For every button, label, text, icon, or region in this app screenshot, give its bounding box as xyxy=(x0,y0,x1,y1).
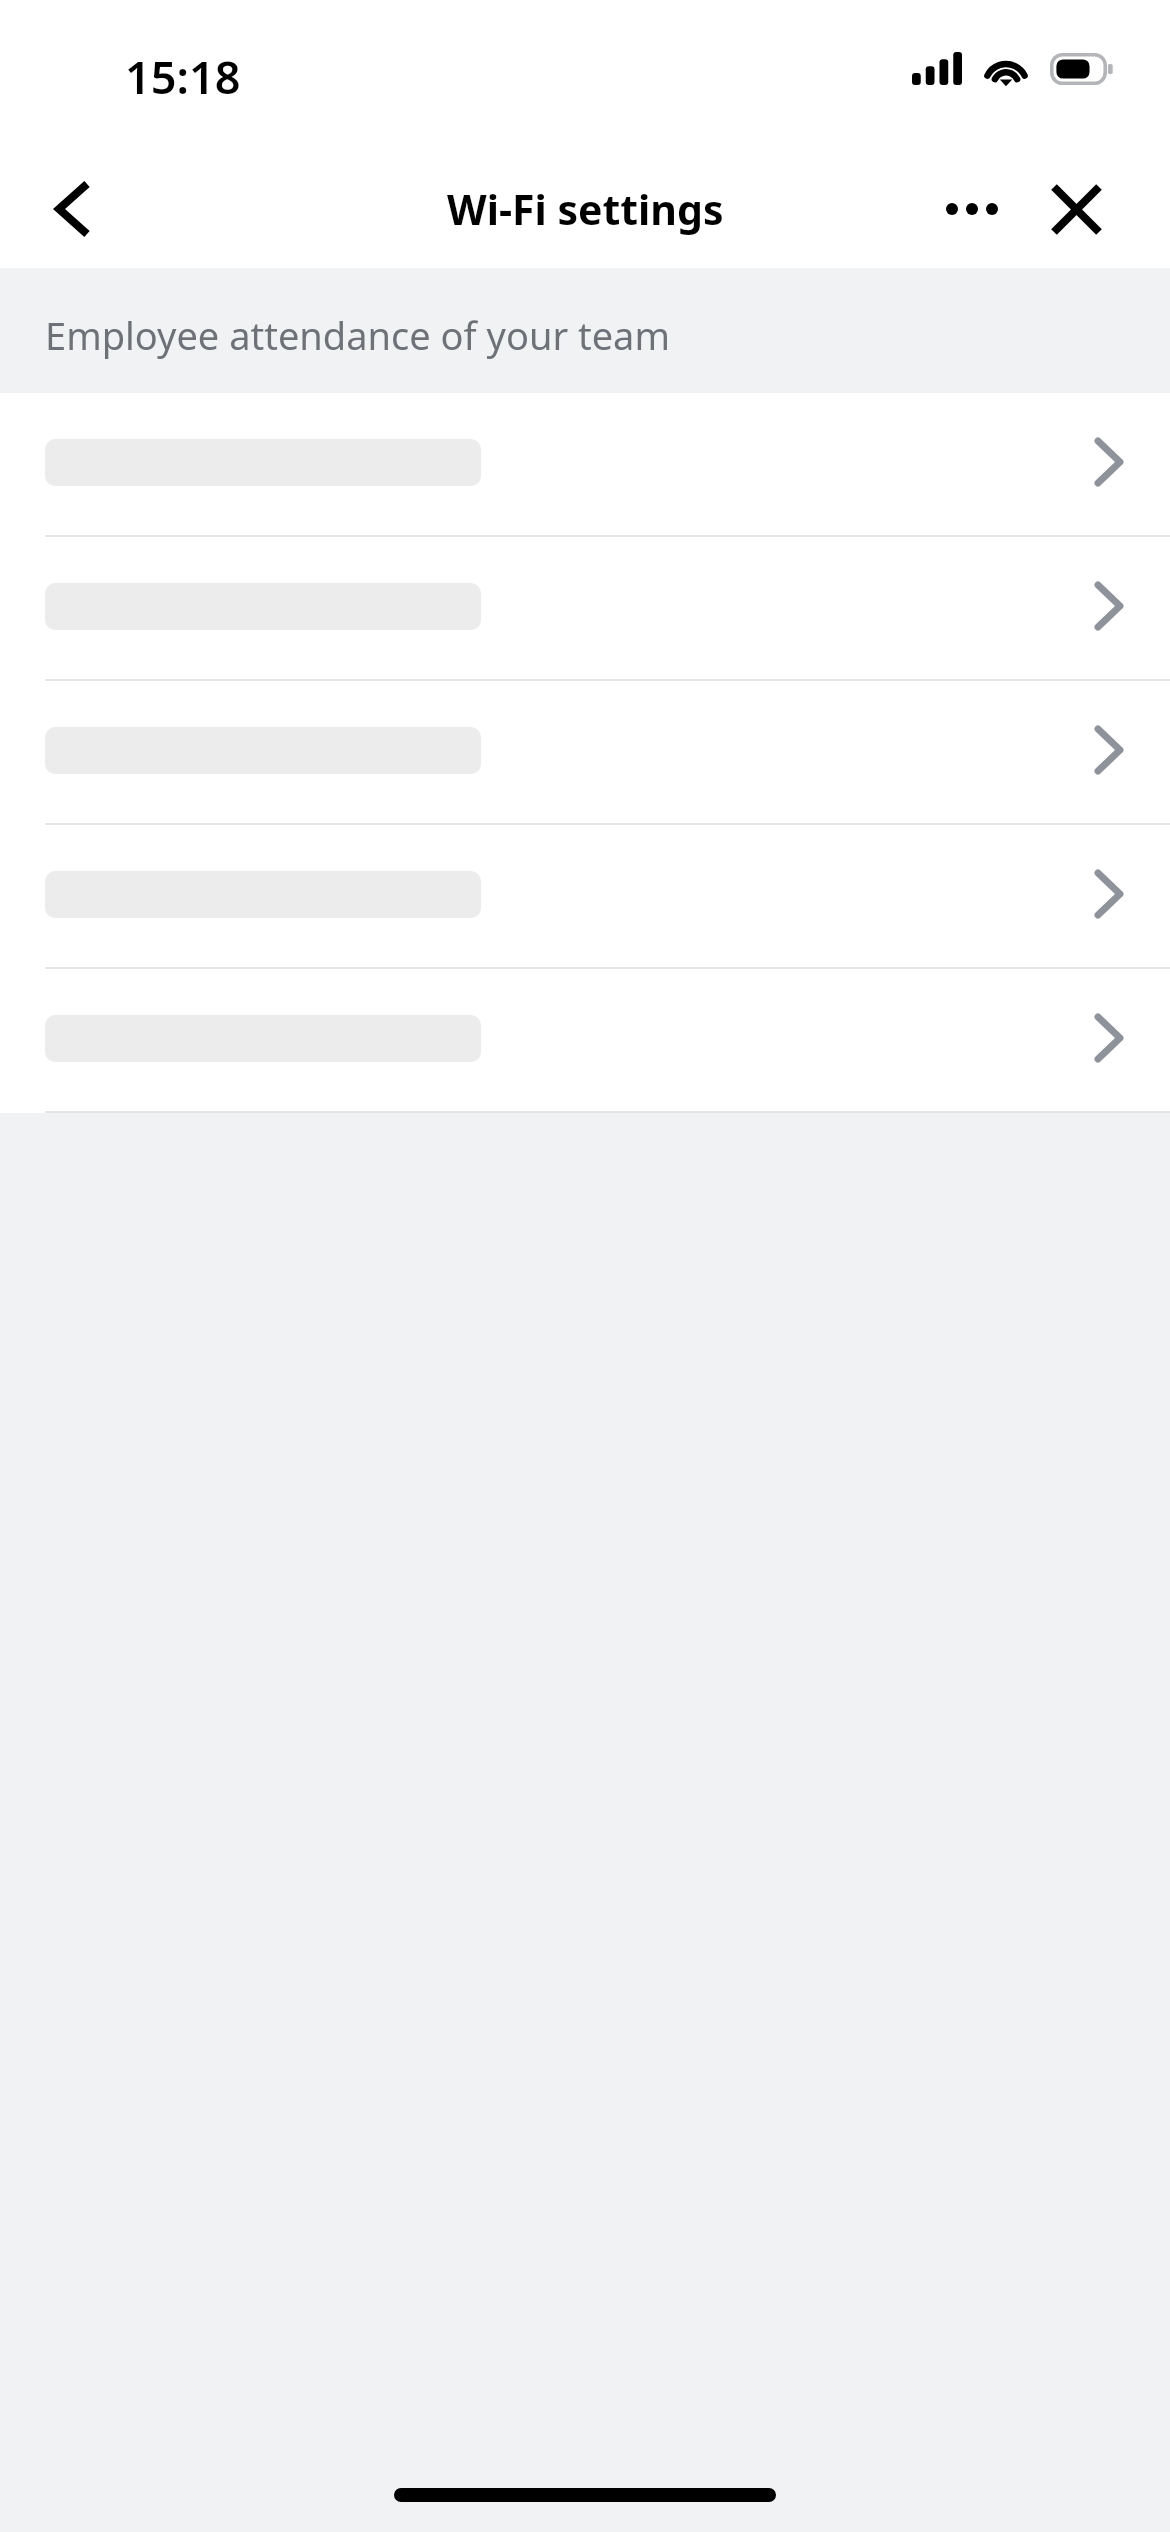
staticText: 15:18 xyxy=(125,46,241,107)
button[interactable] xyxy=(0,537,1170,681)
staticText: Wi-Fi settings xyxy=(447,181,724,237)
button[interactable]: More options xyxy=(924,163,1020,255)
staticText: Employee attendance of your team xyxy=(45,309,670,361)
button[interactable] xyxy=(0,825,1170,969)
button[interactable] xyxy=(0,681,1170,825)
button[interactable] xyxy=(0,969,1170,1113)
button[interactable]: Close xyxy=(1030,163,1122,255)
button[interactable]: Back xyxy=(26,162,120,256)
button[interactable] xyxy=(0,393,1170,537)
